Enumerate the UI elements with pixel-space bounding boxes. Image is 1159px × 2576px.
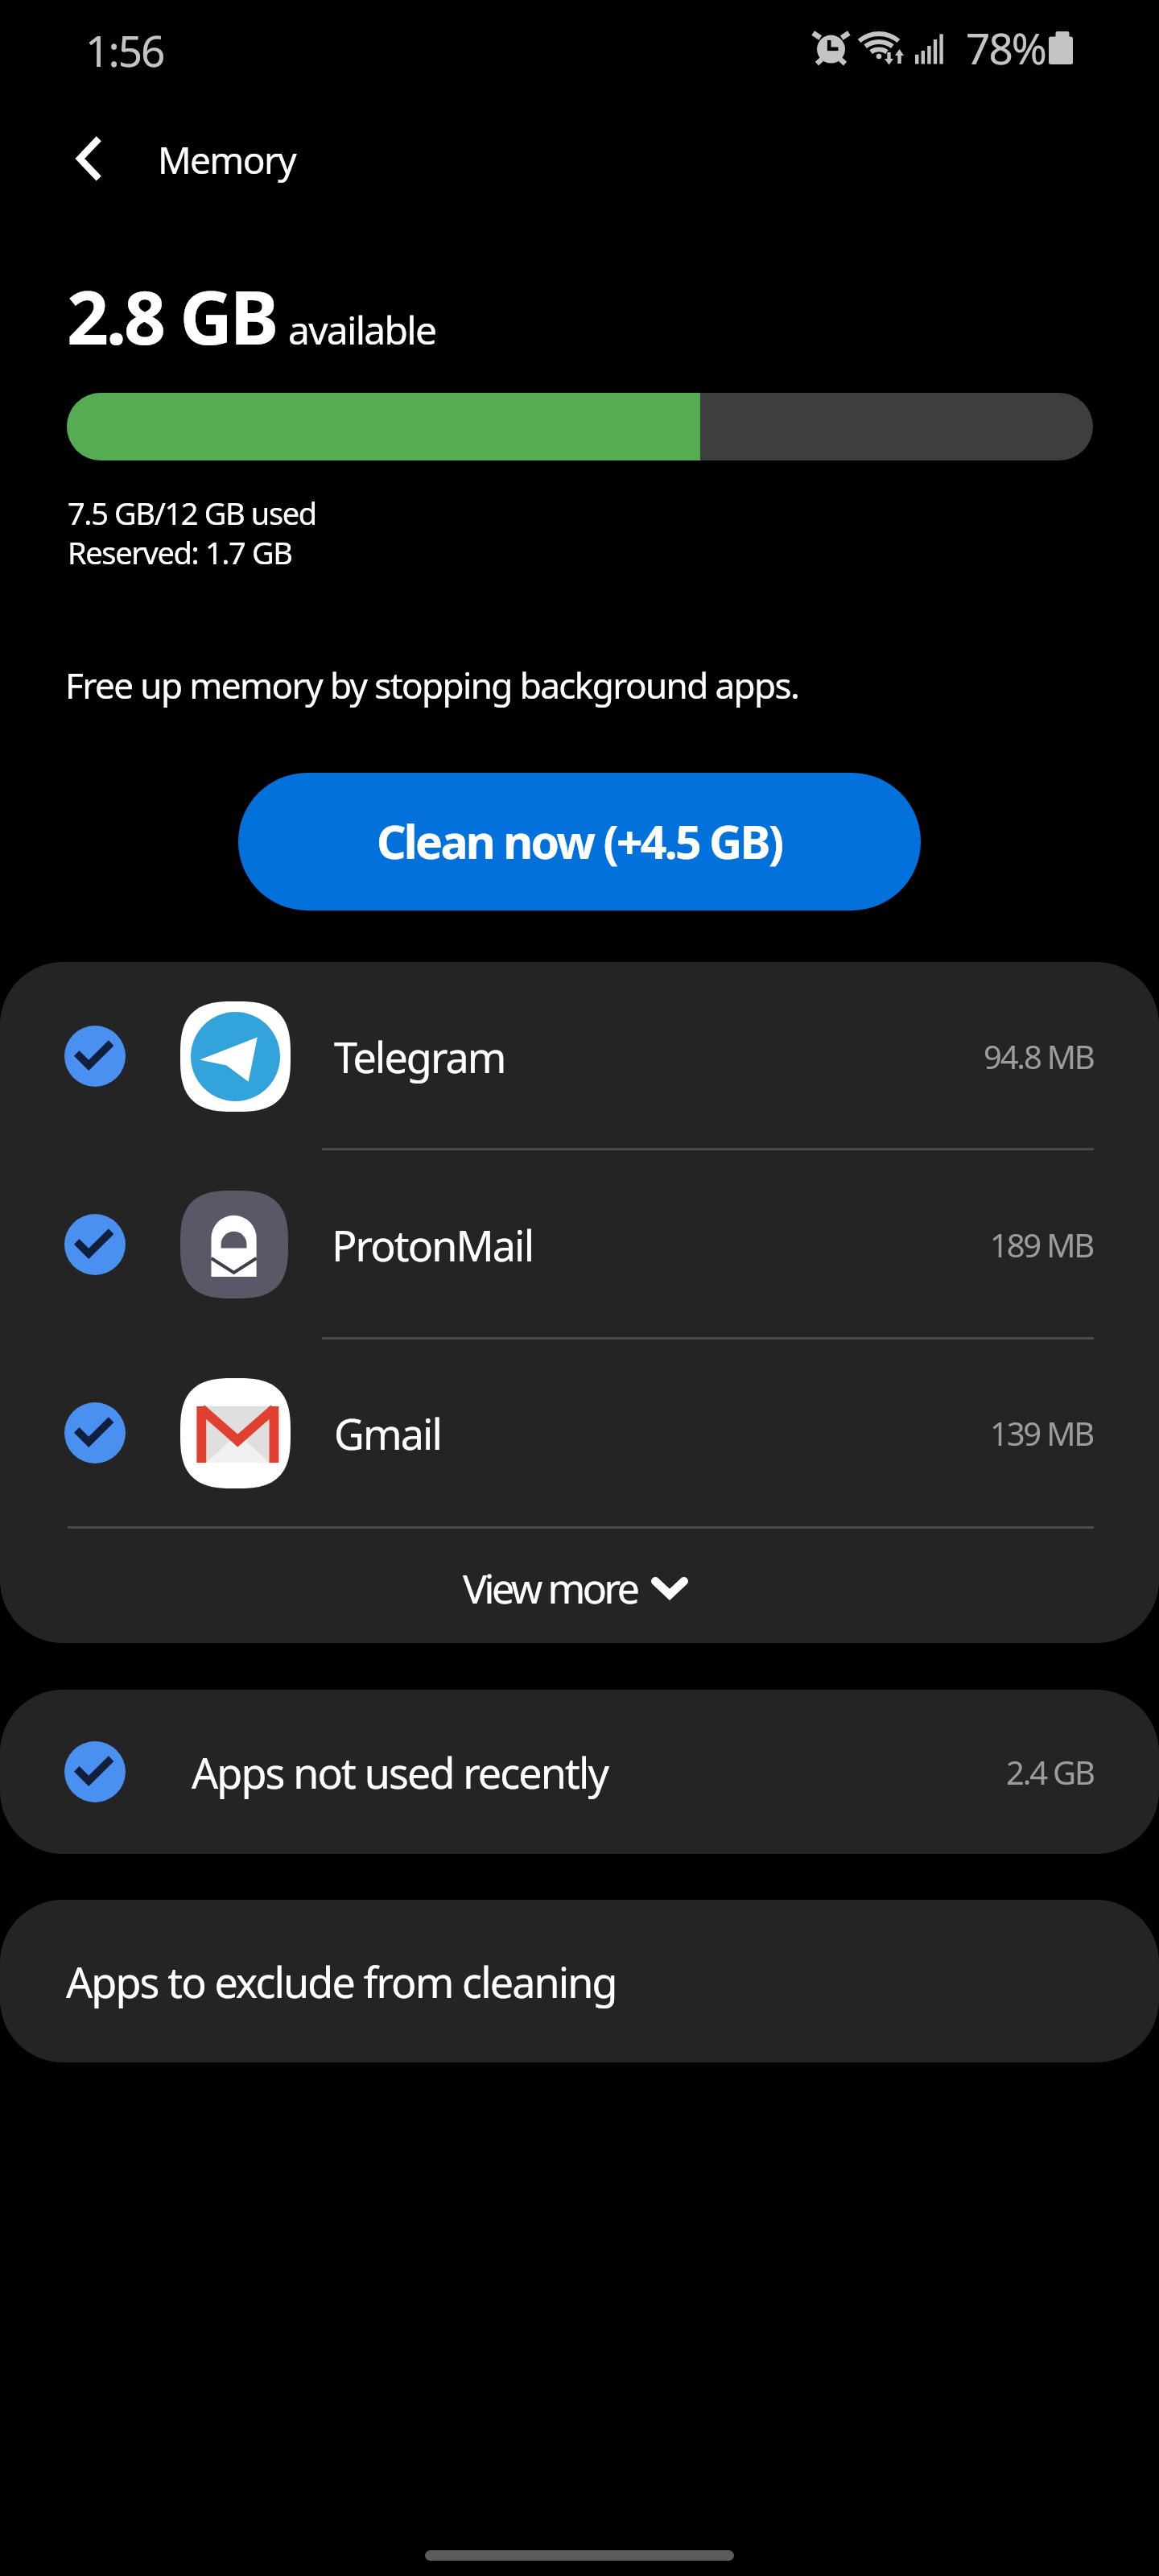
staticText: Reserved: 1.7 GB <box>68 531 292 573</box>
staticText: 94.8 MB <box>984 1034 1094 1078</box>
staticText: Memory <box>158 134 296 185</box>
staticText: 139 MB <box>990 1411 1094 1455</box>
staticText: 189 MB <box>990 1223 1094 1266</box>
button[interactable]: ProtonMail <box>0 1152 1159 1337</box>
button[interactable]: Clean now (+4.5 GB) <box>238 773 921 910</box>
button[interactable]: Apps to exclude from cleaning <box>0 1900 1159 2062</box>
staticText: Free up memory by stopping background ap… <box>65 661 799 709</box>
staticText: 7.5 GB/12 GB used <box>68 492 316 534</box>
staticText: 1:56 <box>85 21 164 79</box>
button[interactable]: Apps not used recently <box>0 1690 1159 1854</box>
staticText: Telegram <box>334 1028 505 1085</box>
staticText: Clean now (+4.5 GB) <box>377 810 782 873</box>
staticText: View more <box>463 1561 637 1616</box>
button[interactable]: Telegram <box>0 964 1159 1149</box>
button[interactable]: Gmail <box>0 1340 1159 1525</box>
staticText: 2.8 GB <box>67 266 277 366</box>
staticText: Apps not used recently <box>192 1744 608 1801</box>
staticText: Gmail <box>334 1405 442 1462</box>
button[interactable]: Back <box>30 111 149 206</box>
staticText: ProtonMail <box>332 1216 534 1274</box>
staticText: available <box>288 303 436 356</box>
staticText: 78% <box>966 19 1046 76</box>
button[interactable]: View more <box>0 1529 1159 1643</box>
staticText: 2.4 GB <box>1006 1750 1094 1794</box>
staticText: Apps to exclude from cleaning <box>66 1953 617 2010</box>
